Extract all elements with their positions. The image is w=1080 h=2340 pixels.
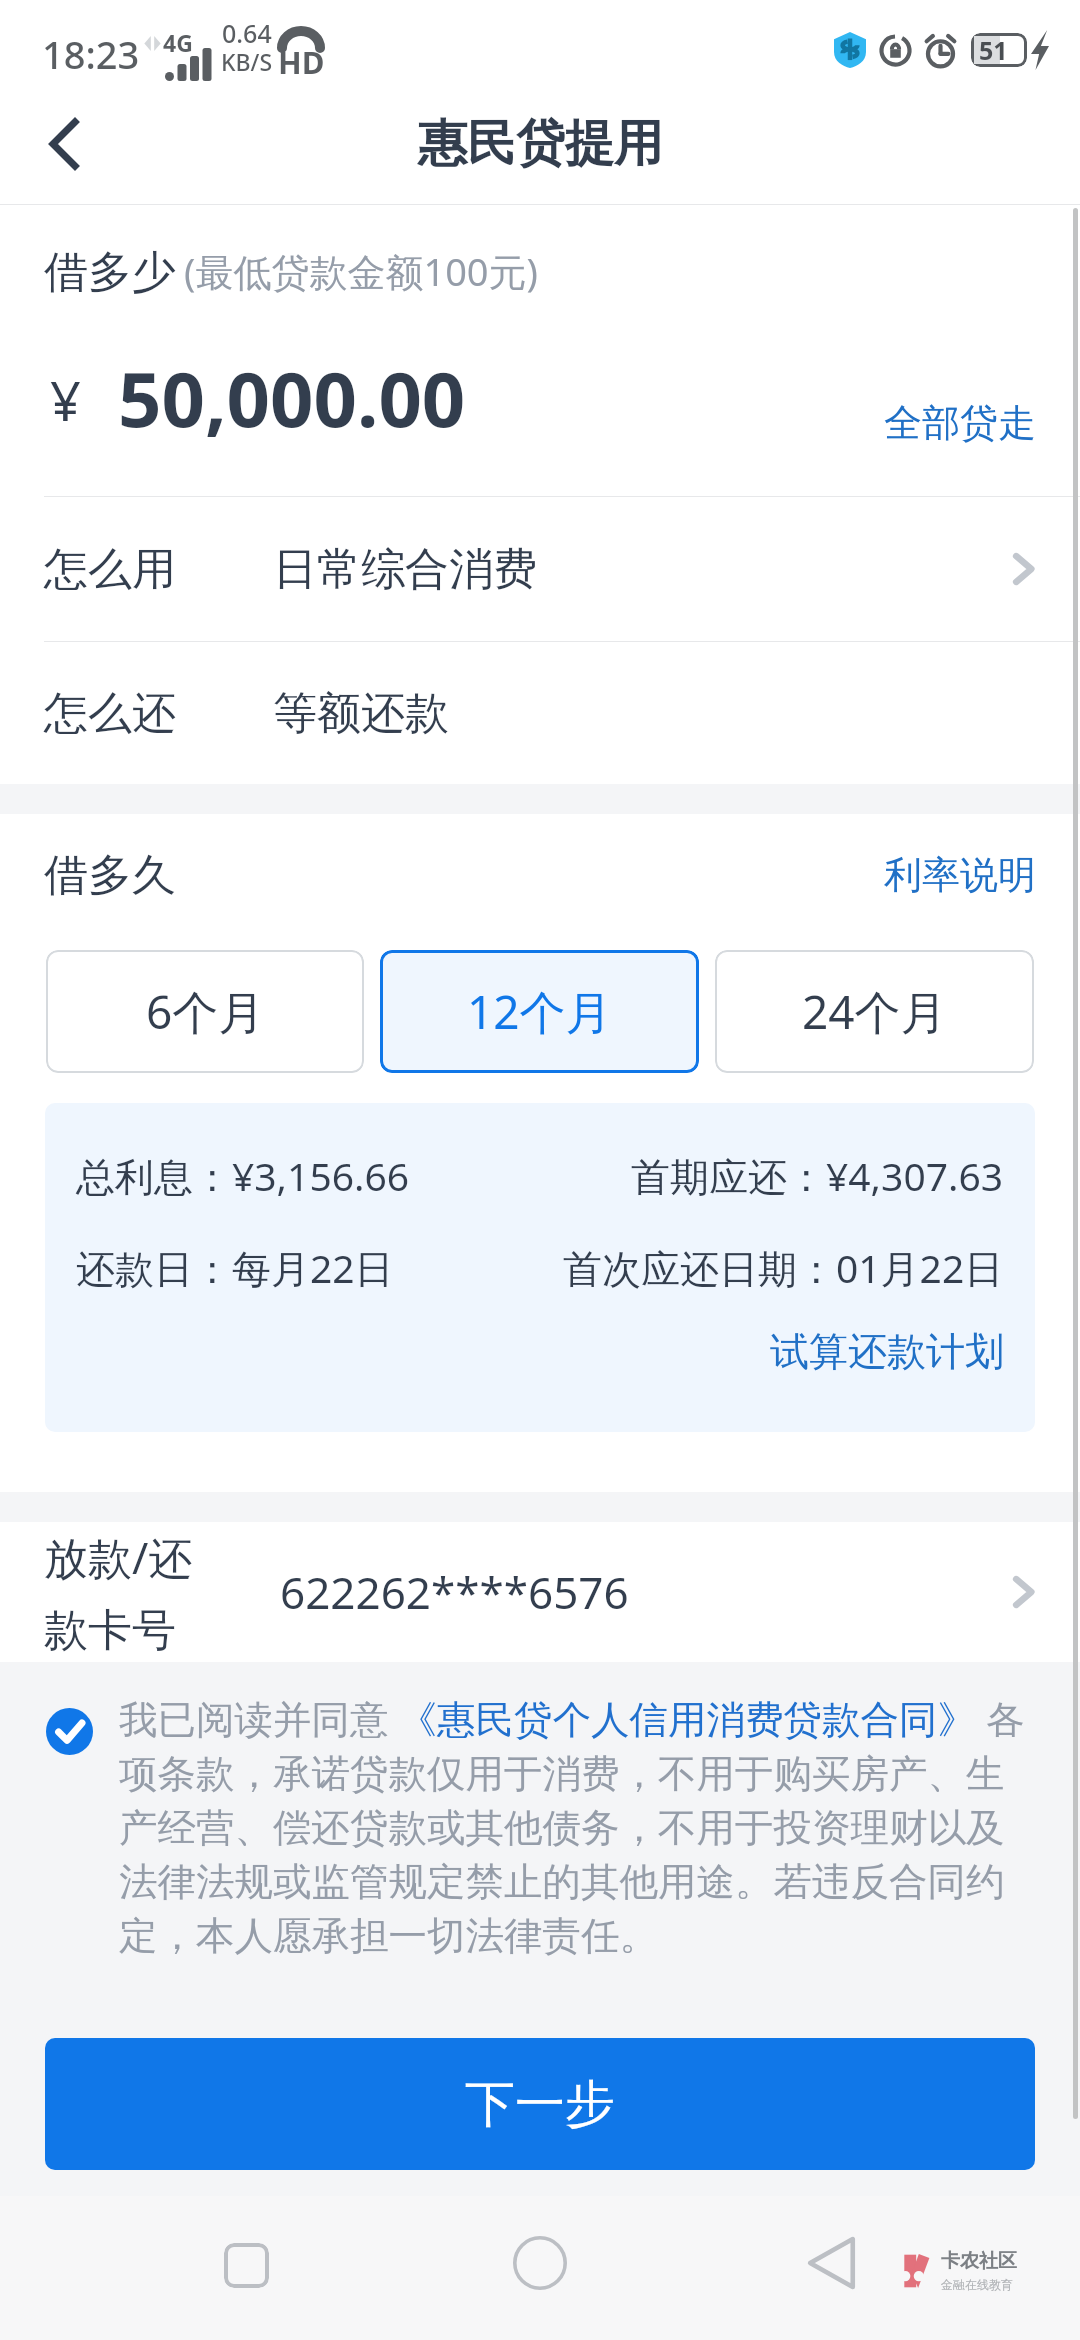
staticText: 50,000.00 xyxy=(118,346,466,450)
staticText: 首次应还日期：01月22日 xyxy=(563,1241,1004,1294)
button[interactable]: 24个月 xyxy=(715,950,1034,1073)
button[interactable]: 全部贷走 xyxy=(884,364,1036,432)
button[interactable]: Home xyxy=(495,2218,585,2308)
button[interactable]: 试算还款计划 xyxy=(770,1327,1004,1376)
staticText: HD xyxy=(278,41,325,83)
staticText: 卡农社区 xyxy=(941,2249,1017,2273)
staticText: 4G xyxy=(163,27,193,58)
staticText: 24个月 xyxy=(802,980,947,1043)
staticText: 下一步 xyxy=(465,2073,615,2136)
staticText: 首期应还：¥4,307.63 xyxy=(631,1149,1004,1202)
staticText: 惠民贷提用 xyxy=(418,113,663,175)
button[interactable]: 利率说明 xyxy=(884,851,1036,899)
staticText: 12个月 xyxy=(467,980,612,1043)
button[interactable]: Back xyxy=(20,99,110,189)
button[interactable]: Recents xyxy=(201,2220,291,2310)
button[interactable]: 放款/还 款卡号 xyxy=(0,1522,1080,1662)
staticText: 6个月 xyxy=(146,980,265,1043)
staticText: 借多久 xyxy=(44,848,176,903)
button[interactable]: Agree to terms checkbox xyxy=(46,1708,93,1755)
staticText: 利率说明 xyxy=(884,851,1036,899)
button[interactable]: Back xyxy=(788,2218,878,2308)
staticText: KB/S xyxy=(221,46,273,77)
staticText: 0.64 xyxy=(222,16,272,50)
staticText: 放款/还 款卡号 xyxy=(44,1527,193,1658)
staticText: 试算还款计划 xyxy=(770,1327,1004,1376)
staticText: 金融在线教育 xyxy=(941,2277,1013,2292)
staticText: 622262****6576 xyxy=(280,1562,629,1622)
staticText: 总利息：¥3,156.66 xyxy=(76,1149,410,1202)
staticText: 18:23 xyxy=(42,28,140,80)
button[interactable]: 怎么用 xyxy=(0,497,1080,641)
staticText: 51 xyxy=(979,33,1008,67)
staticText: 等额还款 xyxy=(273,686,449,741)
staticText: 日常综合消费 xyxy=(273,542,537,597)
staticText: 全部贷走 xyxy=(884,399,1036,447)
button[interactable]: 怎么还 xyxy=(0,642,1080,784)
staticText: ¥ xyxy=(50,363,81,437)
button[interactable]: 12个月 xyxy=(380,950,699,1073)
staticText: 怎么用 xyxy=(44,542,176,597)
staticText: 怎么还 xyxy=(44,686,176,741)
staticText: 我已阅读并同意 《惠民贷个人信用消费贷款合同》 各项条款，承诺贷款仅用于消费，不… xyxy=(119,1692,1025,1961)
staticText: 借多少 xyxy=(44,245,176,300)
staticText: (最低贷款金额100元) xyxy=(184,245,539,297)
staticText: 还款日：每月22日 xyxy=(76,1241,394,1294)
button[interactable]: 下一步 xyxy=(45,2038,1035,2170)
button[interactable]: 6个月 xyxy=(46,950,364,1073)
